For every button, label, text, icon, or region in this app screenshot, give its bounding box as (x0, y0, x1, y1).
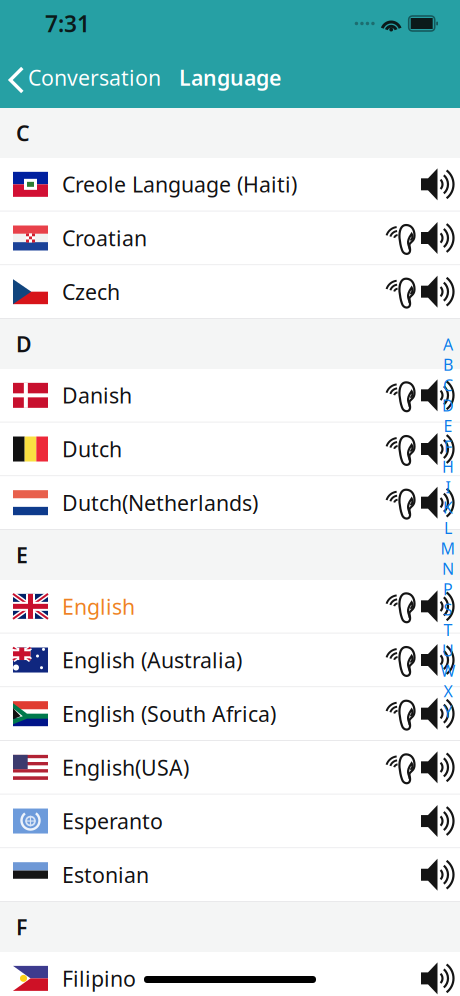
staticText: D (442, 395, 454, 416)
staticText: T (443, 619, 452, 640)
staticText: English (62, 592, 135, 620)
button[interactable]: Czech (0, 265, 460, 319)
button[interactable]: Filipino (0, 952, 460, 996)
staticText: K (443, 497, 453, 518)
staticText: Esperanto (62, 807, 163, 835)
staticText: E (16, 541, 28, 569)
staticText: E (443, 415, 452, 436)
staticText: Creole Language (Haiti) (62, 170, 297, 198)
staticText: F (444, 436, 452, 457)
staticText: U (442, 640, 454, 661)
button[interactable]: Danish (0, 369, 460, 423)
staticText: A (443, 334, 453, 355)
staticText: Czech (62, 277, 120, 306)
staticText: Estonian (62, 860, 149, 889)
staticText: Dutch (62, 435, 122, 463)
staticText: H (442, 456, 454, 477)
staticText: M (440, 538, 455, 559)
staticText: W (440, 660, 455, 681)
button[interactable]: Estonian (0, 848, 460, 902)
button[interactable]: Conversation (0, 55, 169, 99)
staticText: C (16, 119, 30, 147)
staticText: Filipino (62, 964, 136, 992)
staticText: P (443, 578, 453, 600)
staticText: English (South Africa) (62, 699, 276, 728)
button[interactable]: Esperanto (0, 795, 460, 848)
button[interactable]: Croatian (0, 212, 460, 265)
staticText: Danish (62, 381, 132, 409)
staticText: Conversation (28, 63, 161, 92)
staticText: Language (179, 63, 281, 92)
staticText: D (16, 330, 32, 358)
staticText: N (442, 558, 454, 579)
button[interactable]: English(USA) (0, 741, 460, 795)
button[interactable]: English (0, 580, 460, 634)
staticText: Dutch(Netherlands) (62, 488, 258, 517)
staticText: English (Australia) (62, 646, 242, 674)
staticText: X (443, 680, 452, 702)
staticText: Croatian (62, 224, 147, 252)
staticText: I (445, 476, 450, 498)
button[interactable]: Creole Language (Haiti) (0, 158, 460, 212)
staticText: S (443, 599, 452, 620)
staticText: F (16, 913, 27, 941)
button[interactable]: Section index (440, 334, 456, 722)
button[interactable]: Dutch (0, 423, 460, 476)
staticText: L (444, 517, 452, 538)
staticText: B (443, 354, 453, 375)
button[interactable]: Dutch(Netherlands) (0, 476, 460, 530)
staticText: 7:31 (45, 8, 90, 38)
staticText: C (443, 374, 453, 396)
button[interactable]: English (South Africa) (0, 687, 460, 741)
staticText: Y (443, 701, 452, 722)
staticText: English(USA) (62, 753, 189, 781)
button[interactable]: English (Australia) (0, 634, 460, 687)
